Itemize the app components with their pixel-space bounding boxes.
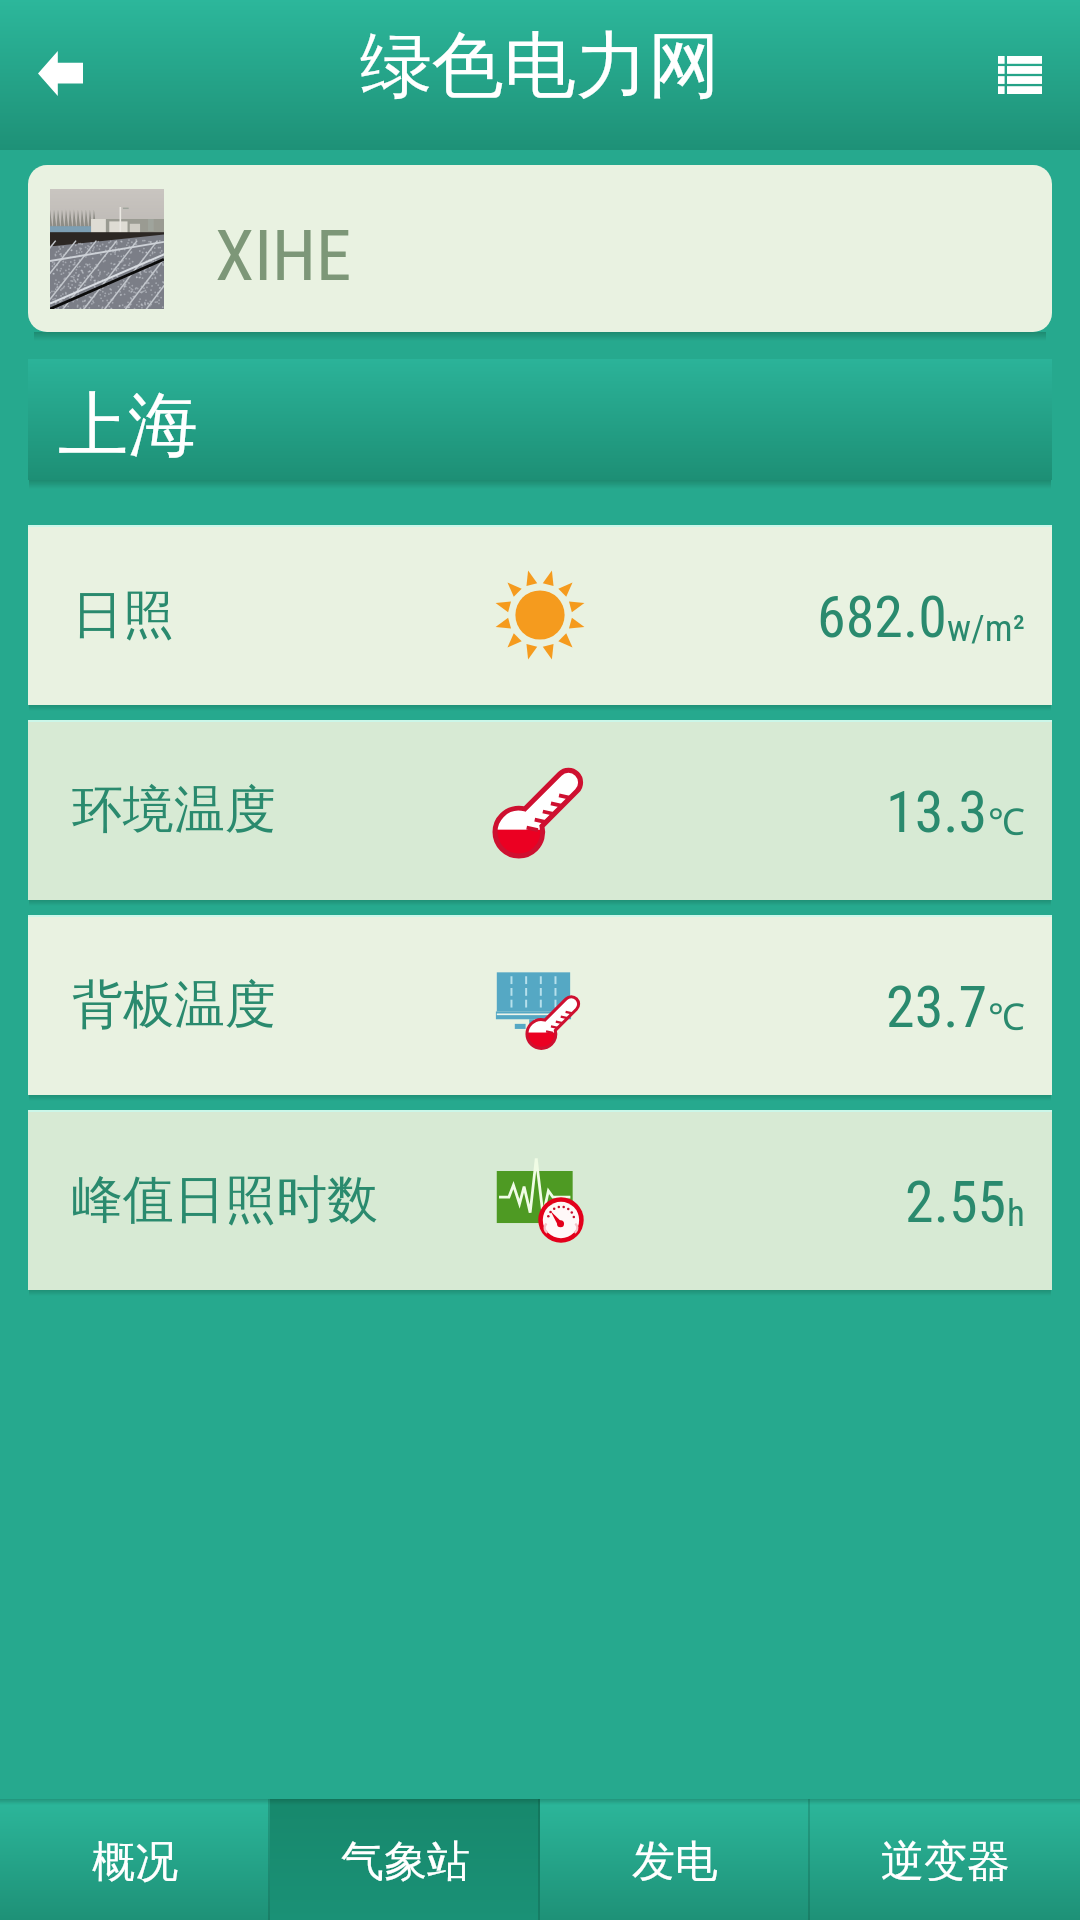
staticText: w/m² [947,607,1025,650]
staticText: 逆变器 [881,1835,1010,1889]
staticText: XIHE [215,214,352,297]
staticText: 绿色电力网 [360,21,720,112]
staticText: 环境温度 [72,778,276,842]
staticText: 气象站 [341,1835,470,1889]
staticText: 日照 [72,583,174,647]
staticText: 上海 [58,382,198,470]
button[interactable]: XIHE [28,165,1052,332]
button[interactable]: 概况 [0,1799,270,1920]
button[interactable]: 环境温度 [28,720,1052,900]
staticText: 23.7 [886,973,988,1041]
staticText: 峰值日照时数 [72,1168,378,1232]
staticText: 发电 [632,1835,718,1889]
staticText: 背板温度 [72,973,276,1037]
staticText: 概况 [92,1835,178,1889]
button[interactable]: 日照 [28,525,1052,705]
button[interactable]: 气象站 [270,1799,540,1920]
button[interactable]: Back [0,0,130,150]
button[interactable]: 峰值日照时数 [28,1110,1052,1290]
button[interactable]: 发电 [540,1799,810,1920]
button[interactable]: Menu [970,0,1080,150]
staticText: ℃ [988,990,1025,1040]
staticText: 13.3 [886,778,988,846]
staticText: 682.0 [817,583,947,651]
button[interactable]: 上海 [28,359,1052,480]
button[interactable]: 逆变器 [810,1799,1080,1920]
button[interactable]: 背板温度 [28,915,1052,1095]
staticText: ℃ [988,795,1025,845]
staticText: 2.55 [905,1168,1007,1236]
staticText: h [1007,1192,1025,1235]
